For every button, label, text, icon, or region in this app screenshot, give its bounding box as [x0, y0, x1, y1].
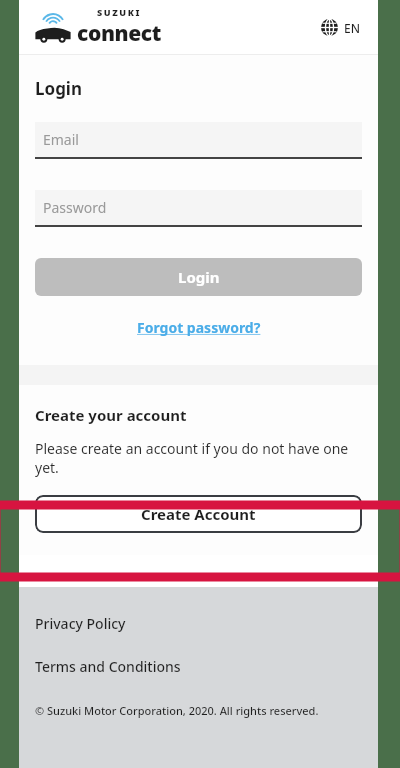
staticText: Create Account: [141, 504, 256, 524]
button[interactable]: Create Account: [35, 495, 362, 533]
button[interactable]: Password: [35, 190, 362, 227]
staticText: Password: [43, 198, 107, 217]
staticText: Privacy Policy: [35, 614, 126, 633]
staticText: Create your account: [35, 405, 187, 425]
staticText: Login: [35, 77, 83, 100]
staticText: Terms and Conditions: [35, 657, 181, 676]
button[interactable]: Terms and Conditions: [35, 654, 181, 679]
button[interactable]: Email: [35, 122, 362, 159]
button[interactable]: Login: [35, 258, 362, 296]
staticText: Login: [178, 267, 220, 287]
button[interactable]: Privacy Policy: [35, 611, 126, 636]
staticText: SUZUKI: [97, 6, 142, 18]
staticText: Forgot password?: [137, 318, 261, 337]
button[interactable]: Forgot password?: [131, 316, 267, 339]
staticText: EN: [344, 20, 360, 36]
button[interactable]: Change language, English: [317, 15, 364, 40]
staticText: connect: [77, 19, 161, 48]
staticText: Email: [43, 130, 79, 149]
staticText: © Suzuki Motor Corporation, 2020. All ri…: [35, 703, 319, 718]
staticText: Please create an account if you do not h…: [35, 439, 362, 477]
